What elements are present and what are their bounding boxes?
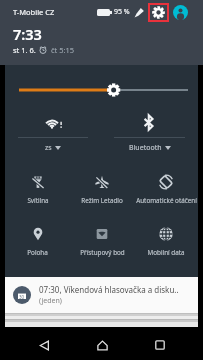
button[interactable]: User profile [172, 4, 189, 21]
button[interactable]: Bluetooth [101, 108, 198, 137]
staticText: (jeden) [39, 296, 62, 306]
button[interactable]: Režim Letadlo [70, 160, 134, 212]
staticText: Mobilní data [147, 248, 185, 257]
staticText: čt 5:15 [51, 45, 75, 55]
button[interactable]: Wi-Fi [5, 108, 101, 137]
button[interactable]: 30 [5, 277, 198, 313]
button[interactable]: Recent apps [144, 330, 176, 360]
button[interactable]: Automatické otáčení [134, 160, 198, 212]
button[interactable]: Mobilní data [134, 212, 198, 264]
button[interactable]: Edit [133, 6, 146, 19]
staticText: 7:33 [13, 24, 42, 44]
staticText: zs [45, 143, 52, 153]
button[interactable]: Settings [148, 3, 169, 22]
staticText: Přístupový bod [80, 248, 125, 257]
staticText: st 1. 6. [13, 45, 36, 55]
staticText: Automatické otáčení [136, 196, 197, 205]
button[interactable]: Přístupový bod [70, 212, 134, 264]
button[interactable]: zs [5, 138, 101, 158]
staticText: 30 [19, 294, 25, 300]
staticText: 95 % [114, 7, 130, 17]
staticText: Poloha [27, 248, 48, 257]
button[interactable]: Brightness [5, 82, 198, 98]
staticText: Bluetooth [129, 143, 162, 153]
staticText: Režim Letadlo [81, 196, 123, 205]
button[interactable]: Back [28, 330, 60, 360]
button[interactable]: Svítilna [5, 160, 70, 212]
button[interactable]: Bluetooth [101, 138, 198, 158]
staticText: Svítilna [27, 196, 49, 205]
staticText: 07:30, Víkendová hlasovačka a disku.. [39, 284, 179, 295]
button[interactable]: Poloha [5, 212, 70, 264]
staticText: T-Mobile CZ [13, 7, 55, 17]
button[interactable]: Home [86, 330, 118, 360]
